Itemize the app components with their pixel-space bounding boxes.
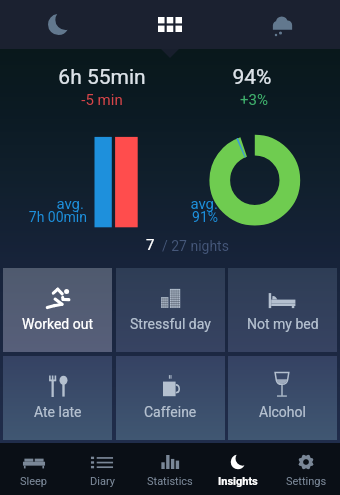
staticText: Worked out: [22, 316, 93, 332]
staticText: Insights: [218, 475, 258, 488]
staticText: Diary: [90, 475, 115, 488]
button[interactable]: Stressful day: [116, 268, 225, 352]
staticText: avg.: [140, 195, 218, 213]
button[interactable]: Weather: [258, 0, 306, 48]
button[interactable]: Insights: [204, 443, 272, 495]
staticText: Settings: [286, 475, 327, 488]
staticText: -5 min: [2, 91, 202, 109]
staticText: Statistics: [147, 475, 193, 488]
button[interactable]: Not my bed: [228, 268, 337, 352]
staticText: Alcohol: [259, 404, 306, 420]
button[interactable]: Worked out: [3, 268, 112, 352]
staticText: 91%: [140, 209, 218, 225]
button[interactable]: Statistics: [136, 443, 204, 495]
staticText: Sleep: [20, 475, 48, 488]
staticText: 94%: [152, 65, 340, 90]
staticText: Caffeine: [144, 404, 197, 420]
button[interactable]: Diary: [68, 443, 136, 495]
staticText: / 27 nights: [155, 238, 229, 254]
button[interactable]: Overview grid: [146, 0, 194, 48]
button[interactable]: Ate late: [3, 356, 112, 440]
button[interactable]: Settings: [272, 443, 340, 495]
staticText: 7h 00min: [0, 209, 87, 225]
staticText: Stressful day: [130, 316, 211, 332]
staticText: Ate late: [34, 404, 82, 420]
staticText: Not my bed: [247, 316, 319, 332]
staticText: 6h 55min: [2, 65, 202, 90]
button[interactable]: Sleep: [0, 443, 68, 495]
staticText: +3%: [154, 91, 340, 109]
staticText: 7: [146, 236, 155, 254]
button[interactable]: Alcohol: [228, 356, 337, 440]
button[interactable]: Caffeine: [116, 356, 225, 440]
staticText: avg.: [0, 195, 84, 213]
button[interactable]: Night mode: [34, 0, 82, 48]
